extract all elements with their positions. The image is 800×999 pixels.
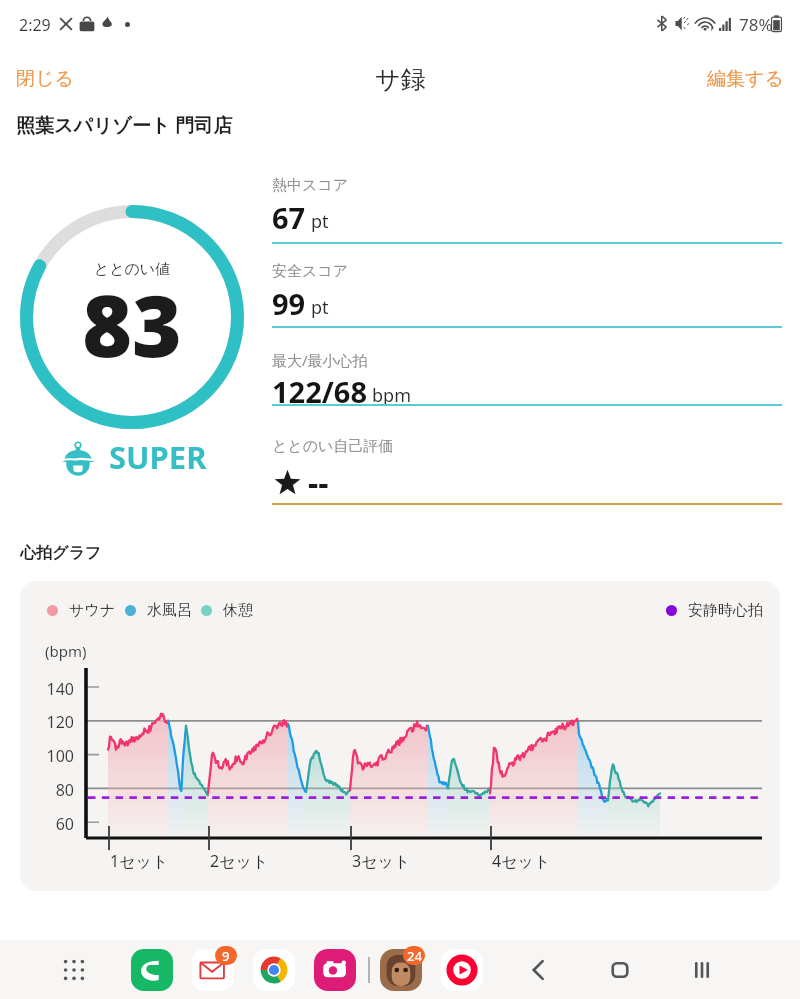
staticText: ととのい自己評価 — [272, 437, 394, 456]
staticText: 78% — [739, 13, 773, 36]
button[interactable]: Apps — [53, 949, 95, 991]
staticText: 休憩 — [223, 601, 253, 620]
staticText: 122/68 — [272, 372, 367, 411]
staticText: 閉じる — [16, 67, 74, 91]
staticText: 83 — [18, 266, 246, 382]
button[interactable]: Back — [515, 946, 563, 994]
staticText: 9 — [222, 947, 230, 965]
staticText: pt — [311, 295, 329, 320]
button[interactable]: Phone — [131, 949, 173, 991]
staticText: 1セット — [110, 850, 200, 872]
staticText: 安全スコア — [272, 262, 349, 281]
staticText: 67 — [272, 198, 306, 237]
staticText: 2:29 — [19, 14, 51, 36]
staticText: サ録 — [375, 64, 426, 95]
staticText: 2セット — [210, 850, 300, 872]
staticText: (bpm) — [45, 641, 87, 661]
button[interactable]: 編集する — [691, 57, 800, 101]
staticText: サウナ — [69, 601, 116, 620]
button[interactable]: Messages — [192, 949, 234, 991]
button[interactable]: Recents — [678, 946, 726, 994]
staticText: -- — [308, 461, 329, 505]
staticText: SUPER — [109, 436, 207, 478]
staticText: pt — [311, 209, 329, 234]
staticText: 編集する — [707, 67, 784, 91]
staticText: 4セット — [492, 850, 582, 872]
staticText: 熱中スコア — [272, 176, 349, 195]
staticText: 80 — [20, 779, 74, 801]
staticText: bpm — [372, 383, 411, 408]
staticText: 3セット — [352, 850, 442, 872]
staticText: 100 — [20, 745, 74, 767]
button[interactable]: Profile — [380, 949, 422, 991]
staticText: 60 — [20, 813, 74, 835]
staticText: 心拍グラフ — [20, 543, 102, 563]
staticText: 最大/最小心拍 — [272, 350, 368, 370]
button[interactable]: 閉じる — [0, 57, 90, 101]
button[interactable]: Chrome — [253, 949, 295, 991]
staticText: 照葉スパリゾート 門司店 — [16, 112, 233, 138]
staticText: 24 — [407, 947, 422, 965]
staticText: 水風呂 — [147, 601, 192, 620]
button[interactable]: Camera — [314, 949, 356, 991]
staticText: 99 — [272, 284, 306, 323]
staticText: 140 — [20, 678, 74, 700]
staticText: 安静時心拍 — [688, 601, 763, 620]
staticText: 120 — [20, 711, 74, 733]
button[interactable]: Home — [596, 946, 644, 994]
staticText: ととのい値 — [18, 260, 246, 279]
button[interactable]: YouTube Music — [441, 949, 483, 991]
